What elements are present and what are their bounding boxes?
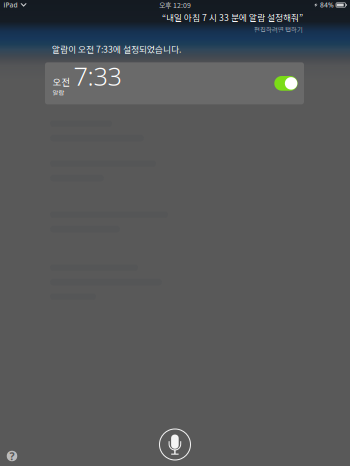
staticText: 7:33 xyxy=(74,59,122,93)
staticText: 알람이 오전 7:33에 설정되었습니다. xyxy=(52,43,181,55)
button[interactable]: 편집하려면 탭하기 xyxy=(254,24,303,34)
button[interactable]: Siri help xyxy=(0,444,24,466)
staticText: iPad xyxy=(3,1,17,9)
staticText: “내일 아침 7 시 33 분에 알람 설정해줘” xyxy=(162,11,303,23)
staticText: 84% xyxy=(320,1,334,9)
button[interactable]: 오전 xyxy=(45,62,304,104)
staticText: 오전 xyxy=(53,75,71,88)
button[interactable]: Speak to Siri xyxy=(152,421,198,466)
staticText: 오후 12:09 xyxy=(159,0,191,10)
staticText: ? xyxy=(9,449,14,463)
staticText: 편집하려면 탭하기 xyxy=(254,24,303,34)
staticText: 알람 xyxy=(53,88,65,97)
